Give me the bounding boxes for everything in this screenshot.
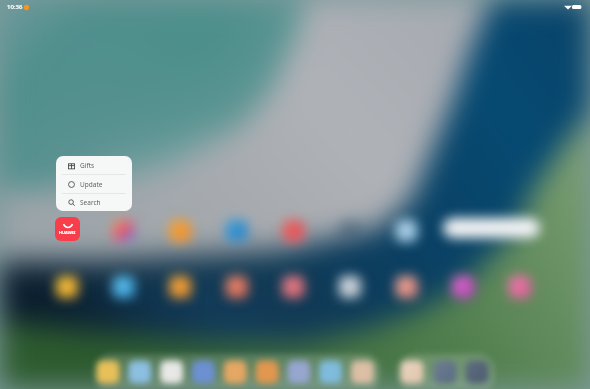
staticText: HUAWEI xyxy=(59,230,76,235)
button[interactable]: Gifts xyxy=(62,156,126,174)
staticText: 10:36 xyxy=(7,3,23,11)
button[interactable]: HUAWEI AppGallery xyxy=(55,217,80,241)
staticText: Search xyxy=(80,198,101,207)
button[interactable]: Search xyxy=(62,194,126,211)
staticText: Update xyxy=(80,180,103,189)
staticText: Gifts xyxy=(80,161,95,170)
button[interactable]: Update xyxy=(62,175,126,193)
